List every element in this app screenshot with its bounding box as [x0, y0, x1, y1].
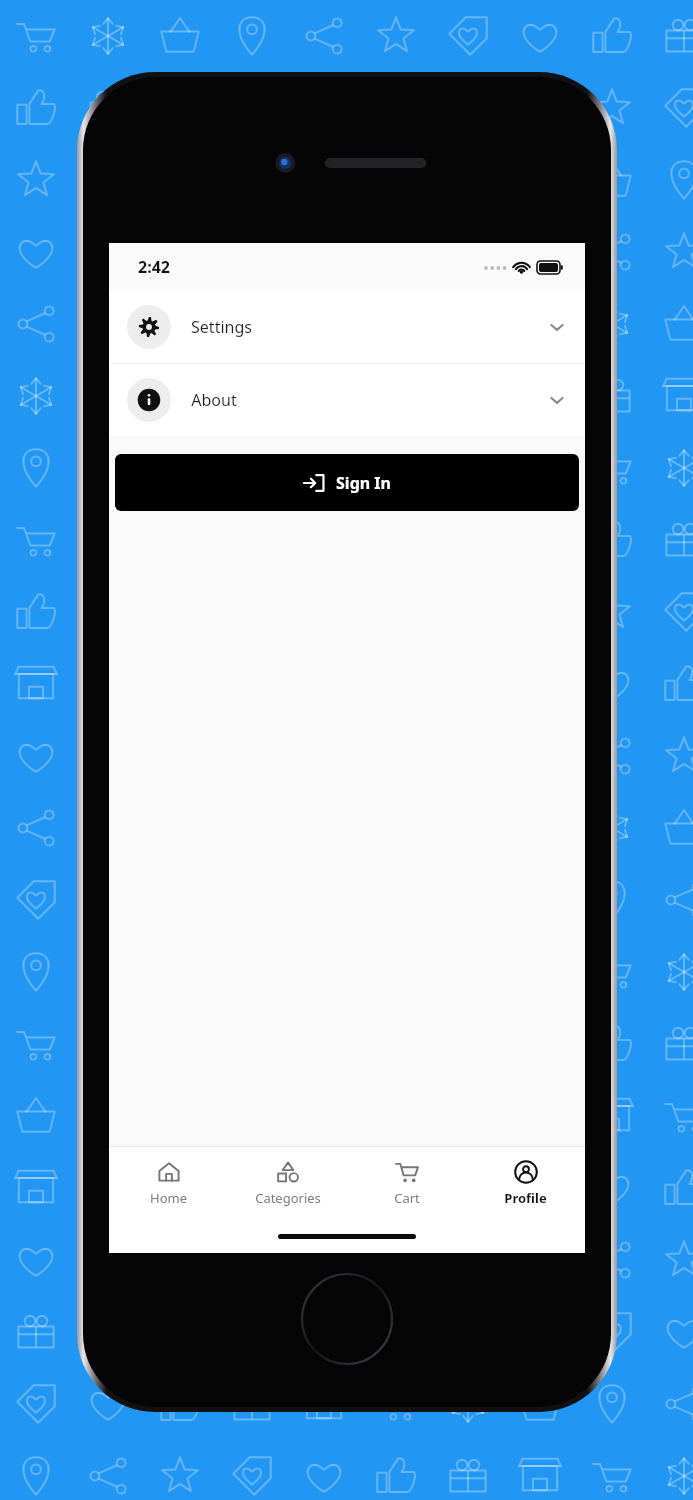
- button[interactable]: Cart: [347, 1147, 466, 1219]
- staticText: Settings: [191, 316, 252, 338]
- staticText: Sign In: [336, 472, 391, 494]
- staticText: Home: [150, 1189, 187, 1207]
- button[interactable]: Settings: [109, 291, 585, 363]
- staticText: Categories: [255, 1189, 321, 1207]
- button[interactable]: Categories: [228, 1147, 347, 1219]
- button[interactable]: About: [109, 364, 585, 436]
- button[interactable]: Sign In: [115, 454, 579, 511]
- staticText: 2:42: [138, 256, 170, 278]
- button[interactable]: Home: [109, 1147, 228, 1219]
- staticText: Cart: [394, 1189, 420, 1207]
- staticText: About: [191, 389, 237, 411]
- staticText: Profile: [504, 1189, 547, 1207]
- button[interactable]: Profile: [466, 1147, 585, 1219]
